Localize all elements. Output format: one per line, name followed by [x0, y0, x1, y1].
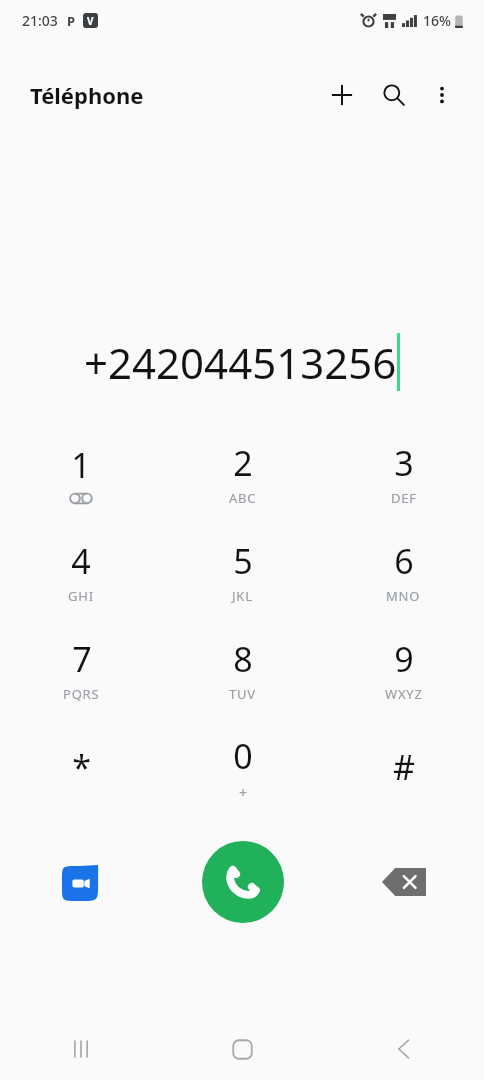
staticText: ABC — [229, 489, 257, 507]
staticText: GHI — [68, 587, 94, 605]
staticText: 4 — [71, 538, 91, 584]
button[interactable]: 4 — [0, 528, 162, 626]
staticText: 5 — [233, 538, 253, 584]
staticText: 9 — [394, 636, 414, 682]
button[interactable]: 6 — [323, 528, 484, 626]
button[interactable]: 7 — [0, 626, 162, 724]
staticText: 16% — [423, 11, 451, 30]
button[interactable]: More options — [422, 75, 462, 115]
button[interactable]: 2 — [162, 430, 323, 528]
staticText: DEF — [391, 489, 417, 507]
button[interactable]: Back — [323, 1018, 484, 1080]
button[interactable]: Search — [372, 73, 416, 117]
button[interactable]: Call — [202, 841, 284, 923]
staticText: +242044513256 — [84, 334, 397, 391]
staticText: MNO — [386, 587, 421, 605]
button[interactable]: # — [323, 724, 484, 822]
staticText: PQRS — [63, 685, 100, 703]
button[interactable]: Add contact — [320, 73, 364, 117]
button[interactable]: 8 — [162, 626, 323, 724]
staticText: 2 — [233, 440, 253, 486]
staticText: 0 — [233, 733, 253, 779]
staticText: 21:03 — [22, 11, 58, 30]
button[interactable]: 0 — [162, 724, 323, 822]
button[interactable]: 5 — [162, 528, 323, 626]
staticText: TUV — [229, 685, 256, 703]
button[interactable]: Home — [162, 1018, 323, 1080]
staticText: 6 — [394, 538, 414, 584]
staticText: 3 — [394, 440, 414, 486]
button[interactable]: 3 — [323, 430, 484, 528]
button[interactable]: 1 — [0, 430, 162, 528]
staticText: + — [239, 783, 248, 802]
button[interactable]: Backspace — [323, 832, 484, 932]
button[interactable]: Video call — [0, 832, 162, 932]
staticText: * — [72, 744, 91, 790]
button[interactable]: 9 — [323, 626, 484, 724]
button[interactable]: Recent apps — [0, 1018, 162, 1080]
button[interactable]: * — [0, 724, 162, 822]
staticText: # — [393, 744, 415, 790]
staticText: Téléphone — [30, 80, 144, 110]
staticText: 8 — [233, 636, 253, 682]
staticText: V — [87, 14, 94, 28]
staticText: P — [67, 12, 76, 30]
staticText: 1 — [71, 442, 91, 488]
staticText: JKL — [232, 587, 253, 605]
staticText: WXYZ — [385, 685, 423, 703]
staticText: 7 — [72, 636, 92, 682]
